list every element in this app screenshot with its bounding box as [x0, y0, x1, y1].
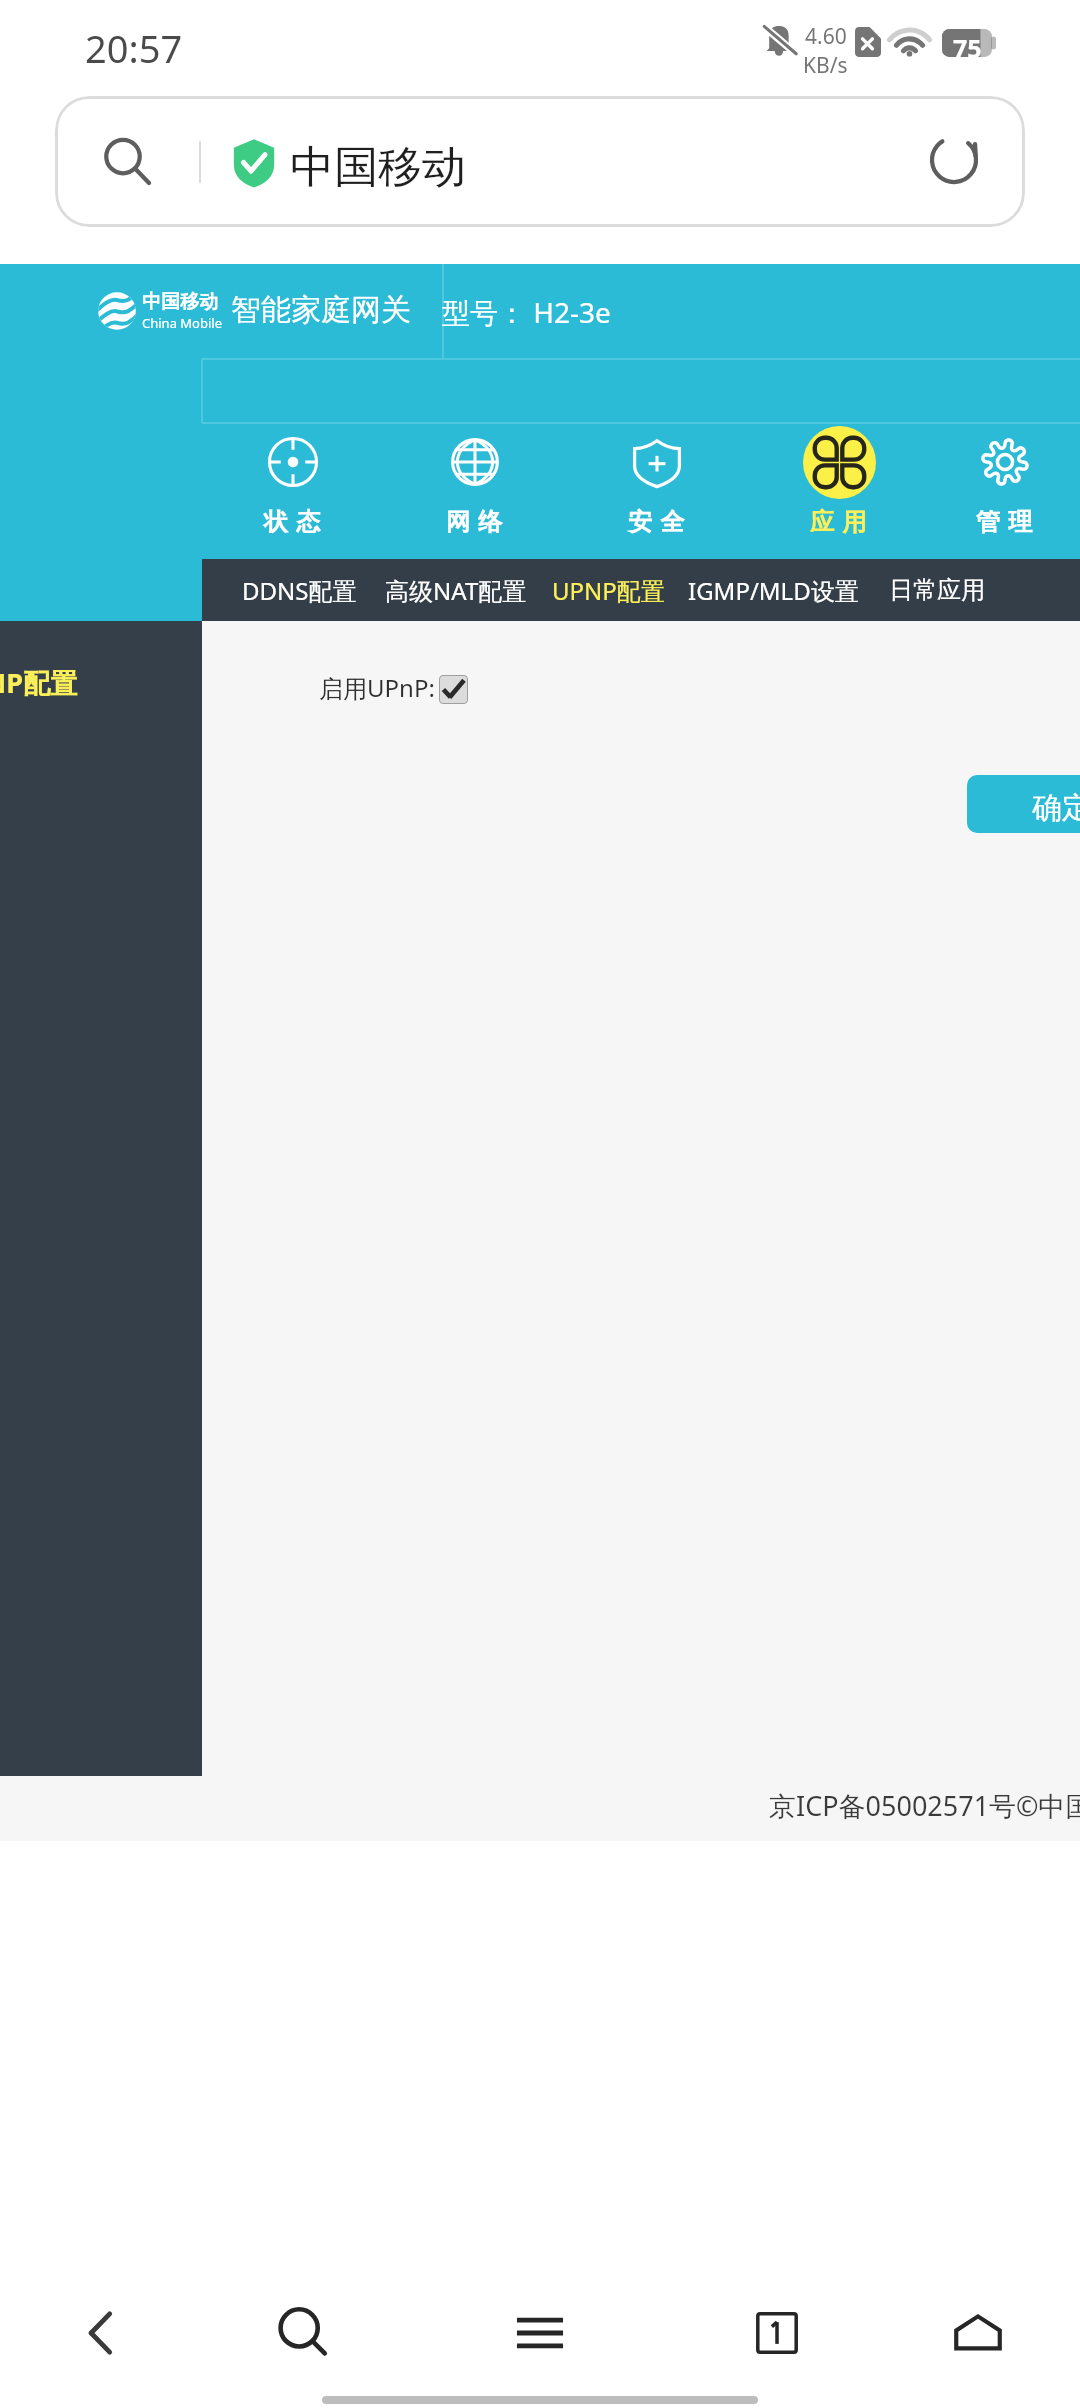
staticText: 状 态: [264, 504, 322, 537]
staticText: 型号： H2-3e: [442, 293, 611, 331]
button[interactable]: Home: [918, 2273, 1038, 2393]
staticText: 20:57: [85, 22, 183, 74]
staticText: 应 用: [810, 504, 868, 537]
staticText: DDNS配置: [242, 574, 357, 607]
staticText: 网 络: [446, 504, 504, 537]
button[interactable]: 高级NAT配置: [385, 559, 527, 621]
staticText: 安 全: [628, 504, 686, 537]
button[interactable]: [439, 675, 468, 704]
button[interactable]: 管 理: [930, 423, 1080, 559]
button[interactable]: Menu: [480, 2273, 600, 2393]
staticText: 中国移动: [290, 140, 466, 195]
staticText: 京ICP备05002571号©中国移动: [769, 1787, 1080, 1824]
button[interactable]: Tabs: [717, 2273, 837, 2393]
other: Search: [103, 137, 153, 187]
staticText: KB/s: [803, 51, 848, 80]
staticText: 75: [953, 31, 982, 65]
staticText: 管 理: [976, 504, 1034, 537]
staticText: 4.60: [805, 22, 847, 51]
staticText: 高级NAT配置: [385, 574, 527, 607]
button[interactable]: 日常应用: [889, 559, 985, 621]
button[interactable]: 确定: [967, 775, 1080, 833]
button[interactable]: 网 络: [384, 423, 566, 559]
staticText: 启用UPnP:: [319, 671, 435, 704]
button[interactable]: DDNS配置: [242, 559, 357, 621]
staticText: 智能家庭网关: [231, 291, 411, 329]
button[interactable]: Search: [243, 2273, 363, 2393]
staticText: UPNP配置: [552, 574, 665, 607]
staticText: UPNP配置: [0, 664, 77, 701]
staticText: 中国移动: [142, 290, 218, 314]
staticText: IGMP/MLD设置: [688, 574, 859, 607]
button[interactable]: Search: [55, 96, 1025, 227]
staticText: 确定: [1032, 789, 1080, 827]
button[interactable]: 状 态: [202, 423, 384, 559]
other: Refresh: [931, 135, 981, 185]
staticText: China Mobile: [142, 314, 223, 332]
staticText: 日常应用: [889, 575, 985, 605]
button[interactable]: 安 全: [566, 423, 748, 559]
button[interactable]: 应 用: [748, 423, 930, 559]
button[interactable]: Back: [42, 2273, 162, 2393]
button[interactable]: UPNP配置: [552, 559, 665, 621]
button[interactable]: IGMP/MLD设置: [688, 559, 859, 621]
